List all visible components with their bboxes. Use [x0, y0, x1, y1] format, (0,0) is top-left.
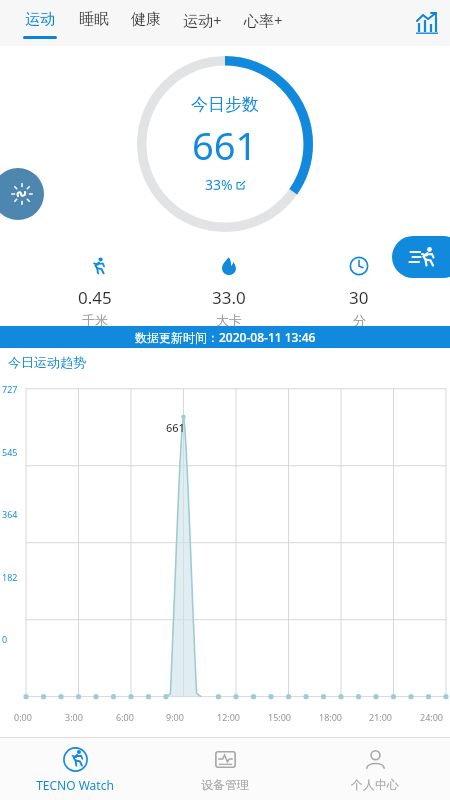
- staticText: 今日运动趋势: [8, 354, 86, 370]
- staticText: 心率+: [244, 10, 283, 30]
- button[interactable]: TECNO Watch: [0, 740, 150, 799]
- button[interactable]: Sync: [0, 168, 44, 220]
- staticText: 18:00: [319, 711, 349, 723]
- staticText: 运动+: [183, 10, 222, 30]
- staticText: 182: [2, 571, 18, 583]
- staticText: 数据更新时间：2020-08-11 13:46: [135, 329, 316, 345]
- button[interactable]: 今日步数: [137, 56, 313, 232]
- button[interactable]: Statistics: [404, 0, 450, 46]
- staticText: 0.45: [78, 286, 112, 309]
- staticText: 睡眠: [79, 10, 109, 29]
- staticText: 运动: [25, 10, 55, 29]
- staticText: 6:00: [116, 711, 146, 723]
- staticText: 12:00: [217, 711, 247, 723]
- button[interactable]: 运动: [12, 0, 68, 46]
- staticText: 21:00: [369, 711, 399, 723]
- staticText: 个人中心: [351, 777, 399, 792]
- staticText: 33.0: [212, 286, 246, 309]
- button[interactable]: 0.45: [56, 251, 134, 330]
- button[interactable]: 30: [324, 251, 394, 330]
- staticText: 健康: [131, 10, 161, 29]
- button[interactable]: 心率+: [233, 0, 294, 46]
- staticText: 364: [2, 508, 18, 520]
- staticText: 661: [192, 119, 258, 171]
- staticText: 今日步数: [191, 94, 259, 115]
- staticText: 727: [2, 383, 18, 395]
- button[interactable]: 睡眠: [68, 0, 120, 46]
- button[interactable]: 设备管理: [150, 740, 300, 798]
- staticText: 33%: [205, 175, 233, 194]
- button[interactable]: Start workout: [392, 236, 450, 278]
- staticText: 0: [2, 633, 8, 645]
- button[interactable]: 运动+: [172, 0, 233, 46]
- staticText: 30: [349, 286, 369, 309]
- button[interactable]: 个人中心: [300, 740, 450, 798]
- staticText: 0:00: [14, 711, 44, 723]
- staticText: 分: [353, 312, 366, 328]
- button[interactable]: 33.0: [190, 251, 268, 330]
- staticText: 24:00: [420, 711, 450, 723]
- staticText: 9:00: [166, 711, 196, 723]
- staticText: 661: [166, 420, 185, 435]
- staticText: 千米: [82, 312, 108, 328]
- staticText: 设备管理: [201, 777, 249, 792]
- staticText: 15:00: [268, 711, 298, 723]
- staticText: 3:00: [65, 711, 95, 723]
- staticText: 大卡: [216, 312, 242, 328]
- staticText: TECNO Watch: [36, 777, 114, 793]
- staticText: 545: [2, 446, 18, 458]
- button[interactable]: 健康: [120, 0, 172, 46]
